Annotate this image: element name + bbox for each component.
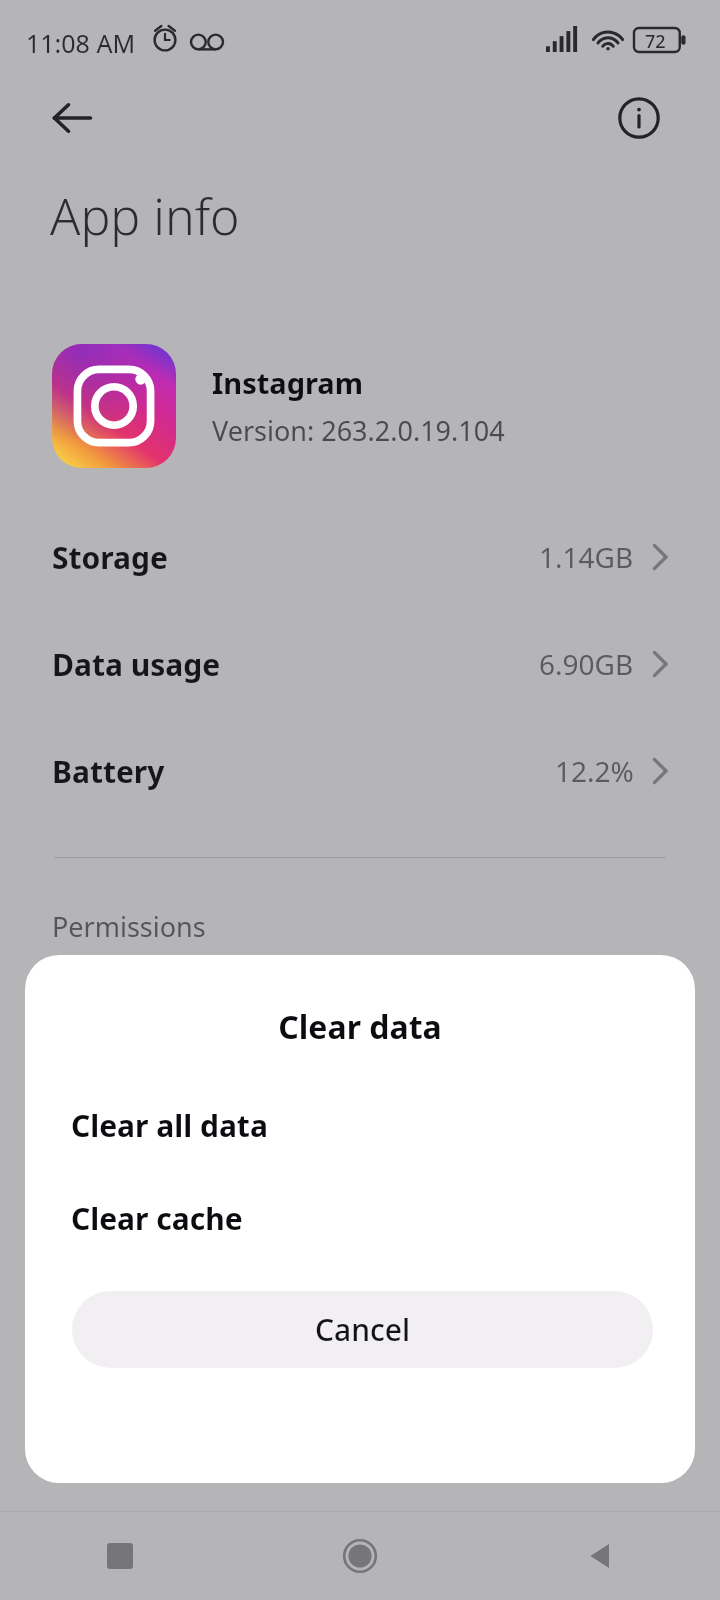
button[interactable]: Battery <box>0 732 720 810</box>
staticText: Instagram <box>212 363 364 402</box>
button[interactable]: Cancel <box>72 1291 653 1368</box>
staticText: App info <box>50 182 240 250</box>
staticText: Version: 263.2.0.19.104 <box>212 412 505 449</box>
staticText: Cancel <box>315 1309 411 1350</box>
button[interactable]: Back <box>34 90 110 146</box>
button[interactable]: Back <box>480 1512 720 1600</box>
button[interactable]: Storage <box>0 518 720 596</box>
button[interactable]: Recent apps <box>0 1512 240 1600</box>
staticText: 12.2% <box>555 752 634 790</box>
staticText: 6.90GB <box>539 645 634 683</box>
button[interactable]: Home <box>240 1512 480 1600</box>
button[interactable]: Clear all data <box>25 1103 695 1147</box>
staticText: 11:08 AM <box>26 26 136 60</box>
button[interactable]: Data usage <box>0 625 720 703</box>
staticText: Storage <box>52 537 168 578</box>
staticText: Battery <box>52 751 165 792</box>
staticText: 72 <box>645 29 666 54</box>
button[interactable]: App details <box>603 82 675 154</box>
staticText: Clear all data <box>71 1105 268 1146</box>
button[interactable]: Clear cache <box>25 1196 695 1240</box>
staticText: Clear cache <box>71 1198 243 1239</box>
staticText: Permissions <box>52 908 206 945</box>
staticText: Data usage <box>52 644 221 685</box>
staticText: Clear data <box>25 1005 695 1049</box>
staticText: 1.14GB <box>539 538 634 576</box>
